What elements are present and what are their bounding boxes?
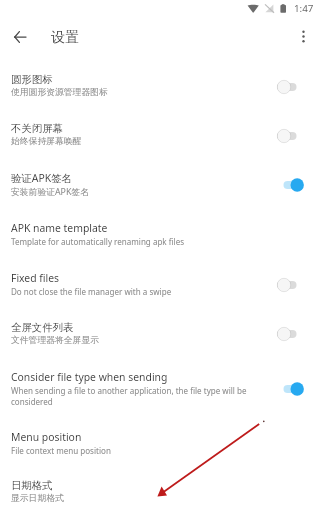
button[interactable]: 不关闭屏幕 [0,110,319,159]
staticText: 1:47 [294,2,314,15]
staticText: 圆形图标 [11,73,53,86]
button[interactable]: 日期格式 [0,467,319,516]
staticText: Do not close the file manager with a swi… [11,286,172,297]
staticText: File context menu position [11,445,111,456]
staticText: 设置 [51,28,80,46]
staticText: Consider file type when sending [11,370,168,384]
button[interactable]: Toggle [277,319,319,347]
staticText: 日期格式 [11,479,53,492]
button[interactable]: APK name template [0,209,319,259]
button[interactable]: Toggle [277,270,319,298]
button[interactable]: Toggle [277,374,319,402]
button[interactable]: Consider file type when sending [0,358,319,418]
staticText: Menu position [11,430,82,444]
staticText: Fixed files [11,271,60,285]
button[interactable]: Menu position [0,418,319,467]
staticText: APK name template [11,221,108,235]
button[interactable]: 验证APK签名 [0,159,319,209]
button[interactable]: 全屏文件列表 [0,308,319,358]
staticText: 全屏文件列表 [11,321,74,334]
staticText: 显示日期格式 [11,493,64,504]
button[interactable]: 圆形图标 [0,61,319,110]
button[interactable]: Toggle [277,170,319,198]
staticText: Template for automatically renaming apk … [11,236,185,247]
staticText: 不关闭屏幕 [11,122,63,135]
staticText: When sending a file to another applicati… [11,385,251,407]
button[interactable]: Back [7,24,32,49]
button[interactable]: Toggle [277,72,319,100]
button[interactable]: Fixed files [0,259,319,308]
staticText: 始终保持屏幕唤醒 [11,136,82,147]
button[interactable]: More options [291,24,315,48]
staticText: 安装前验证APK签名 [11,186,89,198]
staticText: 使用圆形资源管理器图标 [11,87,108,98]
staticText: 验证APK签名 [11,171,72,185]
staticText: 文件管理器将全屏显示 [11,335,99,346]
button[interactable]: Toggle [277,121,319,149]
